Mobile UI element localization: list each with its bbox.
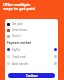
- button[interactable]: Get paid: [6, 21, 57, 27]
- staticText: PayPal: [12, 48, 21, 52]
- staticText: Continue: [26, 74, 38, 78]
- staticText: Track it: [12, 34, 21, 38]
- staticText: Get paid: [12, 22, 23, 26]
- staticText: Offer multiple ways to get paid: [3, 2, 35, 12]
- staticText: Send invoice: [12, 28, 28, 32]
- button[interactable]: Bank transfer: [6, 60, 57, 67]
- button[interactable]: PayPal: [6, 46, 57, 53]
- button[interactable]: Credit card: [6, 53, 57, 60]
- button[interactable]: Continue: [8, 73, 55, 78]
- staticText: Bank transfer: [12, 62, 29, 66]
- staticText: Payment method: [7, 41, 32, 45]
- button[interactable]: Track it: [6, 33, 57, 39]
- button[interactable]: Send invoice: [6, 27, 57, 33]
- staticText: Credit card: [12, 55, 26, 59]
